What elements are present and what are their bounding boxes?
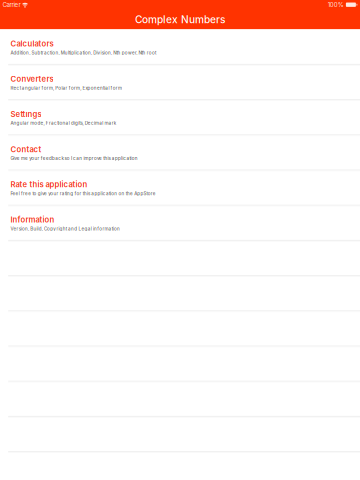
button[interactable]: Contact [0,136,360,171]
staticText: 100% [328,1,344,8]
staticText: Settings [10,109,41,119]
button[interactable]: Converters [0,66,360,101]
staticText: Calculators [10,39,53,48]
button[interactable]: Settings [0,101,360,136]
staticText: Converters [10,74,53,84]
staticText: Angular mode, Fractional digits, Decimal… [10,120,116,126]
button[interactable]: Information [0,207,360,242]
staticText: Feel free to give your rating for this a… [10,191,156,196]
button[interactable]: Calculators [0,31,360,66]
staticText: Version, Build, Copyright and Legal info… [10,226,120,231]
staticText: Rectangular form, Polar form, Exponentia… [10,85,122,91]
staticText: Information [10,215,54,224]
staticText: Carrier [3,1,21,8]
button[interactable]: Rate this application [0,171,360,207]
staticText: Complex Numbers [135,13,225,26]
staticText: Give me your feedback so I can improve t… [10,156,138,161]
staticText: Rate this application [10,180,87,189]
staticText: Addition, Subtraction, Multiplication, D… [10,50,156,55]
staticText: Contact [10,145,41,154]
